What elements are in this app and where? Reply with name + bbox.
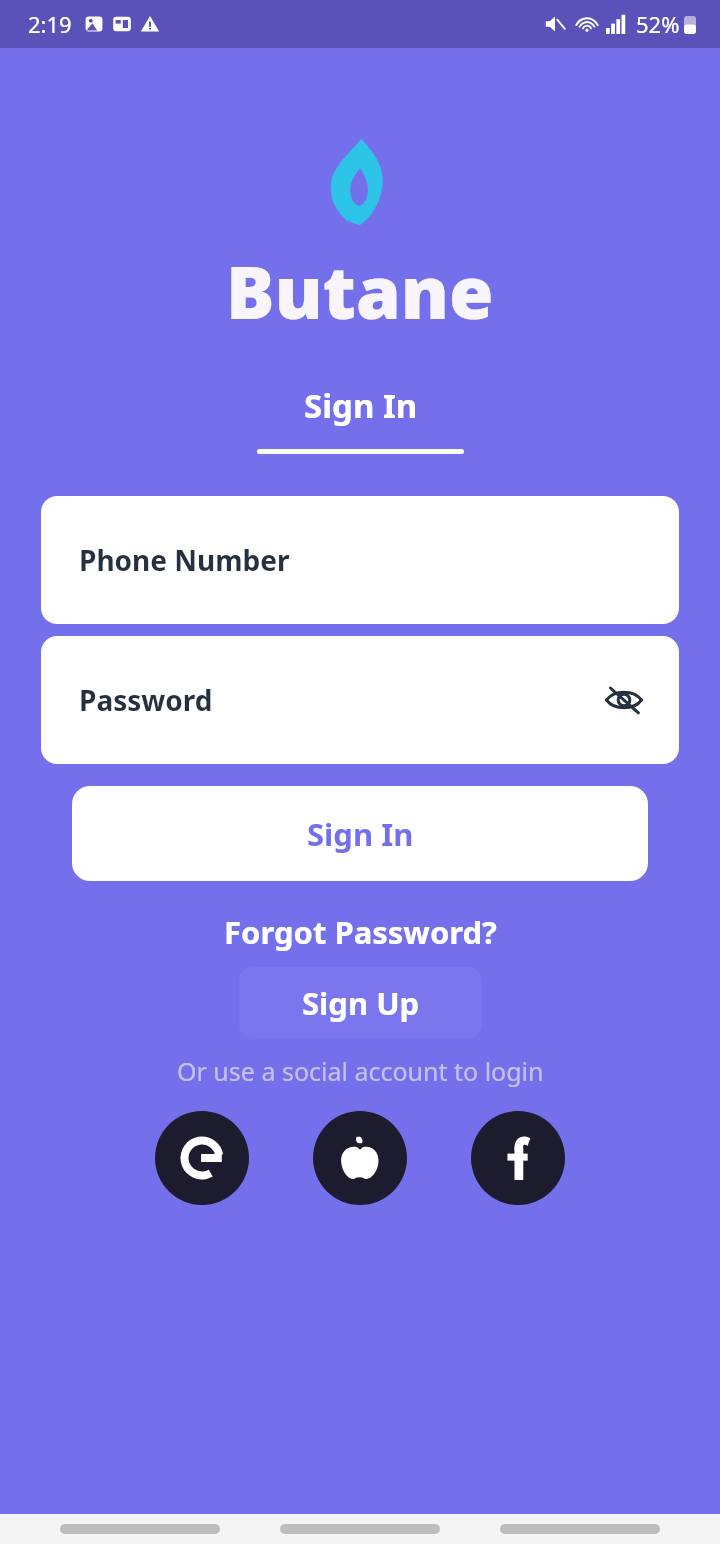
staticText: Password [79,681,213,719]
staticText: 52% [636,9,680,39]
button[interactable]: Sign Up [239,967,482,1038]
button[interactable]: Sign in with Google [155,1111,249,1205]
staticText: Forgot Password? [224,911,497,953]
staticText: Sign Up [302,982,420,1024]
button[interactable]: Forgot Password? [224,911,497,953]
button[interactable]: Phone Number [41,496,679,624]
staticText: Sign In [304,383,418,428]
staticText: Phone Number [79,541,290,579]
button[interactable]: Sign In [72,786,648,881]
button[interactable]: Sign in with Facebook [471,1111,565,1205]
button[interactable]: Navigation button [500,1524,660,1534]
button[interactable]: Sign in with Apple [313,1111,407,1205]
staticText: Sign In [307,813,414,855]
staticText: 2:19 [28,9,72,39]
button[interactable]: Password [41,636,679,764]
button[interactable]: Toggle password visibility [597,673,651,727]
button[interactable]: Sign In [257,383,464,454]
staticText: Butane [226,242,494,340]
button[interactable]: Navigation button [280,1524,440,1534]
staticText: Or use a social account to login [177,1054,544,1088]
button[interactable]: Navigation button [60,1524,220,1534]
